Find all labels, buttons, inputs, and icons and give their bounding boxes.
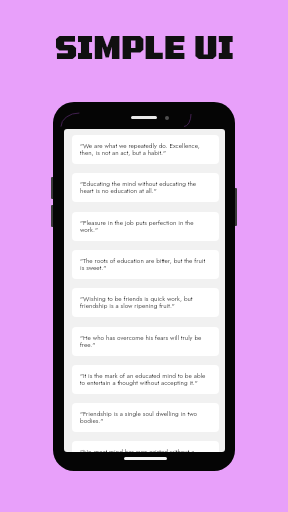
staticText: "The roots of education are bitter, but … — [80, 256, 211, 273]
button[interactable]: "We are what we repeatedly do. Excellenc… — [72, 135, 219, 164]
button[interactable]: "It is the mark of an educated mind to b… — [72, 365, 219, 394]
staticText: "Pleasure in the job puts perfection in … — [80, 218, 211, 235]
button[interactable]: "Wishing to be friends is quick work, bu… — [72, 288, 219, 317]
staticText: "No great mind has ever existed without … — [80, 447, 211, 452]
staticText: "We are what we repeatedly do. Excellenc… — [80, 141, 211, 158]
button[interactable]: "Friendship is a single soul dwelling in… — [72, 403, 219, 432]
staticText: "Friendship is a single soul dwelling in… — [80, 409, 211, 426]
staticText: "It is the mark of an educated mind to b… — [80, 371, 211, 388]
staticText: "Wishing to be friends is quick work, bu… — [80, 294, 211, 311]
button[interactable]: "Pleasure in the job puts perfection in … — [72, 212, 219, 241]
staticText: "He who has overcome his fears will trul… — [80, 333, 211, 350]
button[interactable]: "The roots of education are bitter, but … — [72, 250, 219, 279]
button[interactable]: "No great mind has ever existed without … — [72, 441, 219, 452]
button[interactable]: "Educating the mind without educating th… — [72, 173, 219, 202]
staticText: SIMPLE UI — [55, 29, 234, 65]
staticText: "Educating the mind without educating th… — [80, 179, 211, 196]
button[interactable]: "He who has overcome his fears will trul… — [72, 327, 219, 356]
